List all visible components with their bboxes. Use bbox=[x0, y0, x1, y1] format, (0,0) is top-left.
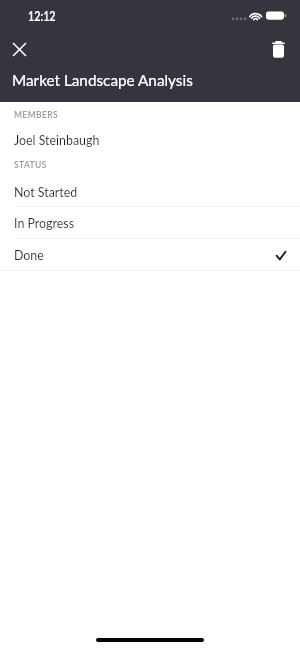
staticText: Market Landscape Analysis bbox=[12, 71, 193, 89]
staticText: MEMBERS bbox=[14, 110, 59, 120]
staticText: Done bbox=[14, 248, 44, 263]
button[interactable]: Delete bbox=[260, 31, 296, 67]
staticText: Joel Steinbaugh bbox=[14, 133, 100, 148]
button[interactable]: Joel Steinbaugh bbox=[0, 128, 300, 152]
staticText: 12:12 bbox=[28, 9, 56, 24]
button[interactable]: Close bbox=[1, 31, 37, 67]
staticText: STATUS bbox=[14, 160, 47, 170]
staticText: In Progress bbox=[14, 216, 75, 231]
button[interactable]: Done bbox=[0, 239, 300, 271]
button[interactable]: Not Started bbox=[0, 177, 300, 207]
button[interactable]: In Progress bbox=[0, 207, 300, 239]
staticText: Not Started bbox=[14, 185, 78, 200]
